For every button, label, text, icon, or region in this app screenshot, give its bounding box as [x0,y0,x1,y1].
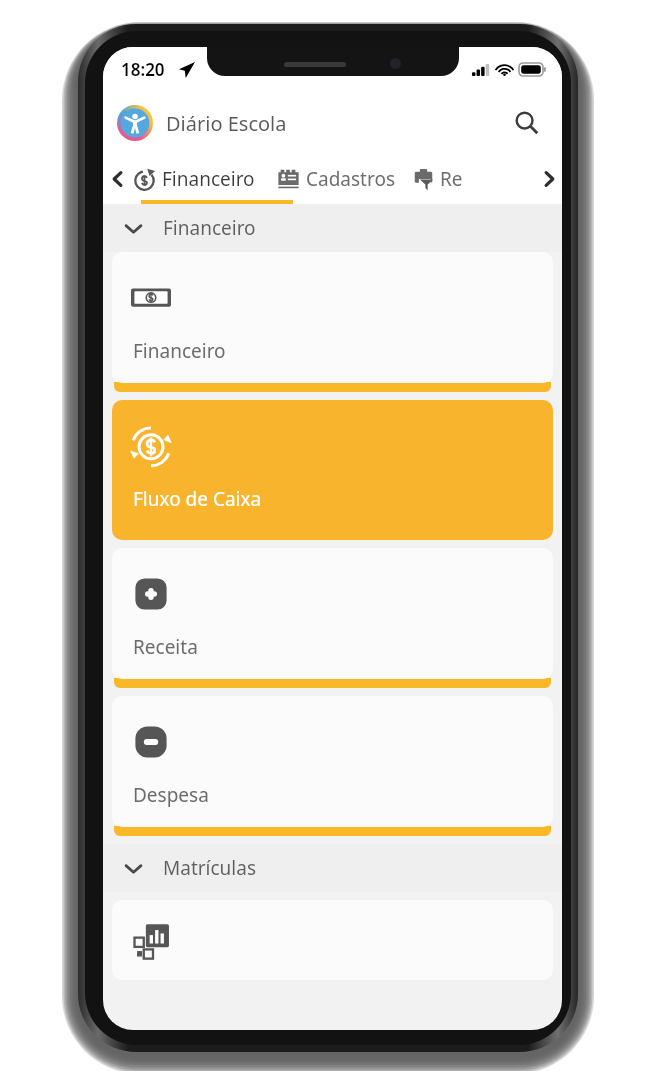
button[interactable]: Previous [103,154,133,204]
staticText: Diário Escola [166,110,287,137]
staticText: Financeiro [162,166,255,192]
staticText: Financeiro [163,215,256,241]
button[interactable]: Cadastros [277,154,396,204]
button[interactable] [112,900,553,980]
staticText: Cadastros [306,166,396,192]
button[interactable]: Matrículas [103,844,562,892]
button[interactable]: Despesa [112,696,553,827]
button[interactable]: Search [506,102,548,144]
button[interactable]: Financeiro [103,204,562,252]
button[interactable]: Financeiro [112,252,553,383]
staticText: Matrículas [163,855,257,881]
button[interactable]: Next [536,154,562,204]
staticText: Re [440,166,463,192]
button[interactable]: Financeiro [133,154,261,204]
staticText: Receita [133,634,198,660]
button[interactable]: Re [412,154,463,204]
staticText: 18:20 [121,58,165,81]
staticText: Financeiro [133,338,226,364]
staticText: Fluxo de Caixa [133,486,262,512]
button[interactable]: Fluxo de Caixa [112,400,553,540]
staticText: Despesa [133,782,209,808]
button[interactable]: Receita [112,548,553,679]
